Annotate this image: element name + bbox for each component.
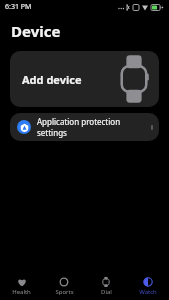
staticText: Dial: [101, 288, 112, 296]
staticText: 6:31 PM: [5, 2, 32, 12]
staticText: Application protection settings: [37, 116, 152, 138]
button[interactable]: Sports: [43, 274, 85, 298]
staticText: Add device: [22, 72, 82, 87]
button[interactable]: Health: [0, 274, 43, 298]
staticText: Watch: [139, 288, 157, 296]
button[interactable]: Add device: [10, 51, 159, 107]
button[interactable]: Watch: [127, 274, 169, 298]
staticText: Device: [11, 21, 61, 41]
button[interactable]: Application protection settings: [10, 113, 159, 141]
button[interactable]: Dial: [85, 274, 127, 298]
staticText: Health: [12, 288, 31, 296]
staticText: Sports: [55, 288, 74, 296]
